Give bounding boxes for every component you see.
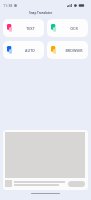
staticText: TEXT [26, 26, 35, 31]
button[interactable]: Install [68, 181, 85, 187]
button[interactable]: TEXT [3, 19, 44, 37]
staticText: 11:38 [3, 3, 13, 8]
staticText: Snap Translator [29, 11, 53, 15]
button[interactable]: AUTO [3, 41, 44, 59]
staticText: BROWSER [65, 48, 83, 53]
button[interactable]: OCR [47, 19, 88, 37]
staticText: AUTO [25, 48, 35, 53]
staticText: OCR [70, 26, 78, 31]
button[interactable]: BROWSER [47, 41, 88, 59]
